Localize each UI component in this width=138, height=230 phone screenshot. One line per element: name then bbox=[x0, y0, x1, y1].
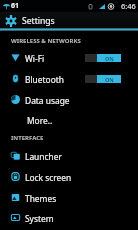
staticText: Launcher bbox=[25, 151, 62, 162]
button[interactable]: Launcher bbox=[0, 146, 138, 167]
staticText: System bbox=[25, 213, 54, 224]
staticText: WIRELESS & NETWORKS bbox=[11, 37, 81, 45]
staticText: ON bbox=[105, 76, 114, 83]
staticText: 61 bbox=[11, 1, 20, 11]
button[interactable]: More.. bbox=[0, 110, 138, 131]
other: Weather bbox=[3, 3, 10, 10]
button[interactable]: Data usage bbox=[0, 90, 138, 111]
staticText: More.. bbox=[27, 115, 53, 126]
button[interactable]: ON bbox=[85, 47, 121, 68]
staticText: Settings bbox=[22, 15, 55, 27]
button[interactable]: Wi-Fi bbox=[0, 48, 138, 69]
button[interactable]: ON bbox=[85, 68, 121, 89]
button[interactable]: Lock screen bbox=[0, 167, 138, 188]
button[interactable]: Themes bbox=[0, 188, 138, 209]
staticText: Bluetooth bbox=[25, 74, 64, 85]
button[interactable]: Settings bbox=[0, 15, 55, 27]
staticText: Data usage bbox=[25, 95, 70, 106]
staticText: Lock screen bbox=[25, 172, 72, 183]
staticText: ON bbox=[105, 55, 114, 62]
staticText: Themes bbox=[25, 193, 57, 204]
staticText: INTERFACE bbox=[11, 134, 44, 142]
staticText: Wi-Fi bbox=[25, 53, 45, 64]
staticText: 6:46 bbox=[121, 1, 136, 11]
button[interactable]: System bbox=[0, 208, 138, 229]
button[interactable]: Bluetooth bbox=[0, 69, 138, 90]
